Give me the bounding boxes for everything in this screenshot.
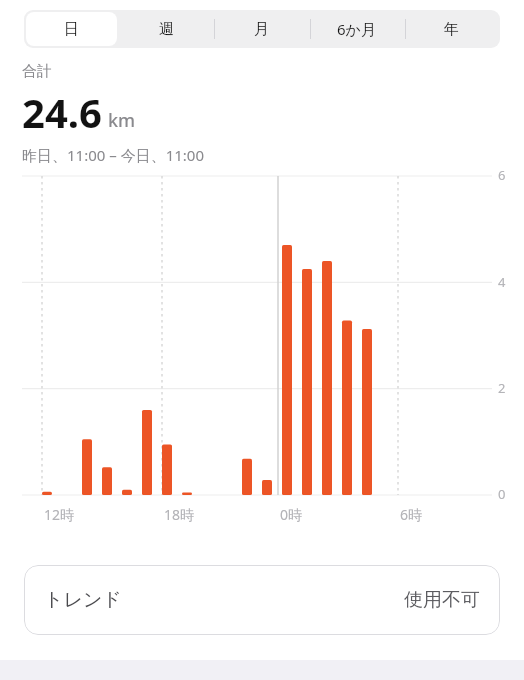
staticText: 週 [159,20,174,39]
staticText: 0時 [280,505,303,524]
button[interactable]: 日 [24,10,119,48]
staticText: 年 [444,20,459,39]
staticText: 6 [498,166,506,184]
staticText: km [108,108,136,133]
staticText: 0 [498,485,506,503]
staticText: 18時 [164,505,195,524]
button[interactable]: 週 [119,10,214,48]
staticText: 12時 [44,505,75,524]
staticText: 4 [498,273,506,291]
staticText: 24.6 [22,85,102,139]
staticText: 合計 [22,62,52,81]
staticText: 使用不可 [404,588,480,612]
button[interactable]: 6か月 [309,10,404,48]
staticText: 6か月 [337,19,376,39]
button[interactable]: 月 [214,10,309,48]
button[interactable]: 年 [404,10,499,48]
button[interactable]: トレンド [24,565,500,635]
staticText: 6時 [400,505,423,524]
staticText: 昨日、11:00 – 今日、11:00 [22,145,204,165]
staticText: 月 [254,20,269,39]
staticText: 日 [64,20,79,39]
staticText: 2 [498,379,506,397]
staticText: トレンド [44,588,404,612]
